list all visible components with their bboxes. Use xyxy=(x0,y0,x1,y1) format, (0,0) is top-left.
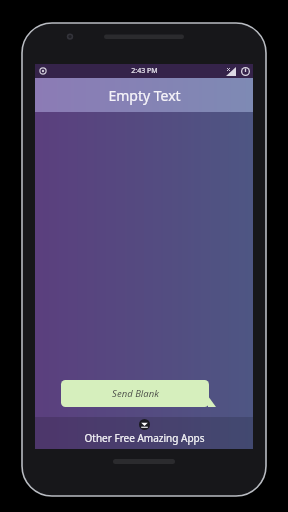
staticText: Empty Text xyxy=(108,86,181,105)
staticText: Send Blank xyxy=(112,387,159,400)
staticText: Other Free Amazing Apps xyxy=(84,431,205,445)
button[interactable]: Other Free Amazing Apps xyxy=(35,417,253,449)
staticText: 2:43 PM xyxy=(131,66,158,76)
button[interactable]: Empty Text xyxy=(35,78,253,112)
button[interactable]: Send Blank xyxy=(61,380,216,407)
